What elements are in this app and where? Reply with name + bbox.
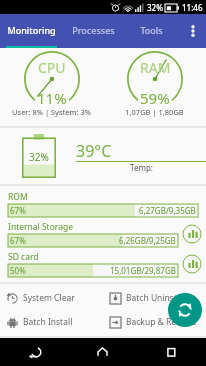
staticText: 15,01GB/29,87GB (110, 265, 176, 276)
staticText: Tools (140, 24, 163, 36)
staticText: 32% (29, 150, 49, 164)
button[interactable]: Storage details (182, 254, 202, 274)
button[interactable]: More options (180, 14, 206, 48)
staticText: Internal Storage (8, 221, 73, 233)
staticText: 1,07GB | 1,80GB (125, 107, 184, 117)
button[interactable]: Back (0, 338, 68, 366)
staticText: User: 8% | System: 3% (12, 107, 91, 117)
staticText: 6,27GB/9,35GB (139, 205, 196, 216)
button[interactable]: SD card (0, 249, 206, 279)
staticText: 11% (37, 88, 67, 107)
staticText: 39°C (76, 140, 112, 162)
staticText: Monitoring (7, 24, 56, 36)
button[interactable]: Storage details (182, 224, 202, 244)
staticText: 67% (10, 235, 26, 246)
staticText: System Clear (23, 292, 75, 304)
staticText: 59% (140, 88, 170, 107)
staticText: Batch Install (23, 316, 73, 328)
button[interactable]: Home (68, 338, 137, 366)
button[interactable]: System Clear (0, 288, 103, 308)
staticText: ROM (8, 191, 28, 203)
button[interactable]: Batch Install (0, 312, 103, 332)
button[interactable]: Tools (123, 14, 180, 48)
staticText: Batch Uninstall (126, 292, 187, 304)
staticText: 67% (10, 205, 26, 216)
button[interactable]: Monitoring (0, 14, 63, 48)
staticText: 6,26GB/9,25GB (119, 235, 176, 246)
staticText: 11:46 (182, 2, 203, 13)
button[interactable]: Refresh (168, 293, 202, 327)
staticText: Processes (72, 24, 115, 36)
staticText: Temp: (130, 162, 153, 173)
button[interactable]: ROM (0, 189, 206, 219)
staticText: SD card (8, 251, 39, 263)
button[interactable]: 32% (0, 128, 206, 184)
button[interactable]: Processes (63, 14, 123, 48)
button[interactable]: CPU (0, 48, 103, 126)
button[interactable]: Backup & Restore (103, 312, 206, 332)
staticText: 32% (147, 2, 163, 13)
button[interactable]: RAM (103, 48, 206, 126)
staticText: RAM (140, 58, 171, 77)
button[interactable]: Internal Storage (0, 219, 206, 249)
staticText: CPU (38, 58, 66, 77)
staticText: Backup & Restore (126, 316, 197, 328)
staticText: 50% (10, 265, 26, 276)
button[interactable]: Batch Uninstall (103, 288, 206, 308)
button[interactable]: Recents (137, 338, 206, 366)
